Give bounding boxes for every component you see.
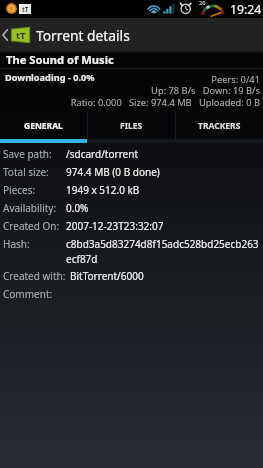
staticText: Availability: [3,201,62,215]
staticText: Total size: [3,165,62,179]
staticText: c8bd3a5d83274d8f15adc528bd25ecb263 [66,237,259,251]
button[interactable]: TRACKERS [176,112,263,139]
staticText: 1949 x 512.0 kB [66,183,140,197]
staticText: 2007-12-23T23:32:07 [66,219,164,233]
staticText: Comment: [3,287,62,301]
staticText: Downloading - 0.0% [5,71,95,84]
staticText: 19:24 [230,1,262,18]
staticText: TRACKERS [198,120,241,132]
staticText: FILES [120,120,143,132]
staticText: GENERAL [24,120,63,132]
staticText: Torrent details [36,26,130,45]
staticText: 974.4 MB (0 B done) [66,165,160,179]
staticText: tT [16,29,26,42]
staticText: /sdcard/torrent [66,147,139,161]
staticText: Peers: 0/41 Up: 78 B/s Down: 19 B/s Rati… [0,73,260,109]
staticText: Created On: [3,219,62,233]
staticText: Hash: [3,237,62,251]
button[interactable]: GENERAL [0,112,87,139]
staticText: tT [22,5,29,14]
staticText: Created with: [3,269,66,283]
staticText: 26 [199,0,206,6]
button[interactable]: Navigate up [0,18,263,52]
other: Navigate up [0,18,10,52]
staticText: ecf87d [66,252,98,266]
staticText: BitTorrent/6000 [70,269,144,283]
button[interactable]: FILES [88,112,175,139]
staticText: The Sound of Music [6,52,114,67]
staticText: Save path: [3,147,62,161]
staticText: 0.0% [66,201,89,215]
staticText: Pieces: [3,183,62,197]
